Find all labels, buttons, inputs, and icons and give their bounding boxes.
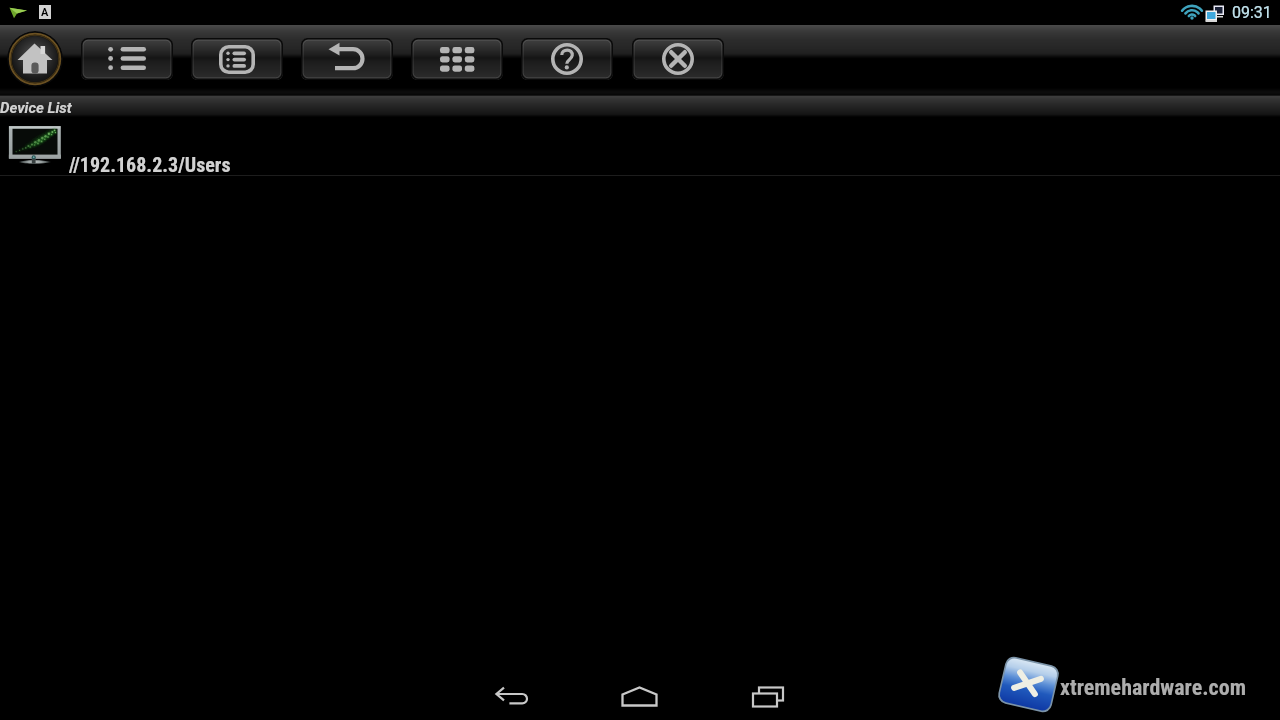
staticText: xtremehardware.com <box>1060 675 1247 701</box>
other: GPS <box>9 7 28 19</box>
other: Network <box>1204 4 1225 22</box>
button[interactable]: Grid view <box>411 38 503 80</box>
button[interactable]: Back <box>301 38 393 80</box>
button[interactable]: Home <box>613 680 667 714</box>
button[interactable]: Help <box>521 38 613 80</box>
staticText: A <box>41 6 49 19</box>
staticText: 09:31 <box>1232 3 1272 22</box>
button[interactable]: Home <box>7 31 63 87</box>
button[interactable]: //192.168.2.3/Users <box>0 117 1280 175</box>
button[interactable]: List view <box>81 38 173 80</box>
button[interactable]: Close <box>632 38 724 80</box>
staticText: Device List <box>0 99 72 117</box>
button[interactable]: Detail view <box>191 38 283 80</box>
staticText: //192.168.2.3/Users <box>69 153 231 176</box>
button[interactable]: Back <box>486 680 538 714</box>
button[interactable]: Recent apps <box>742 680 796 714</box>
other: Wi-Fi <box>1181 4 1203 21</box>
